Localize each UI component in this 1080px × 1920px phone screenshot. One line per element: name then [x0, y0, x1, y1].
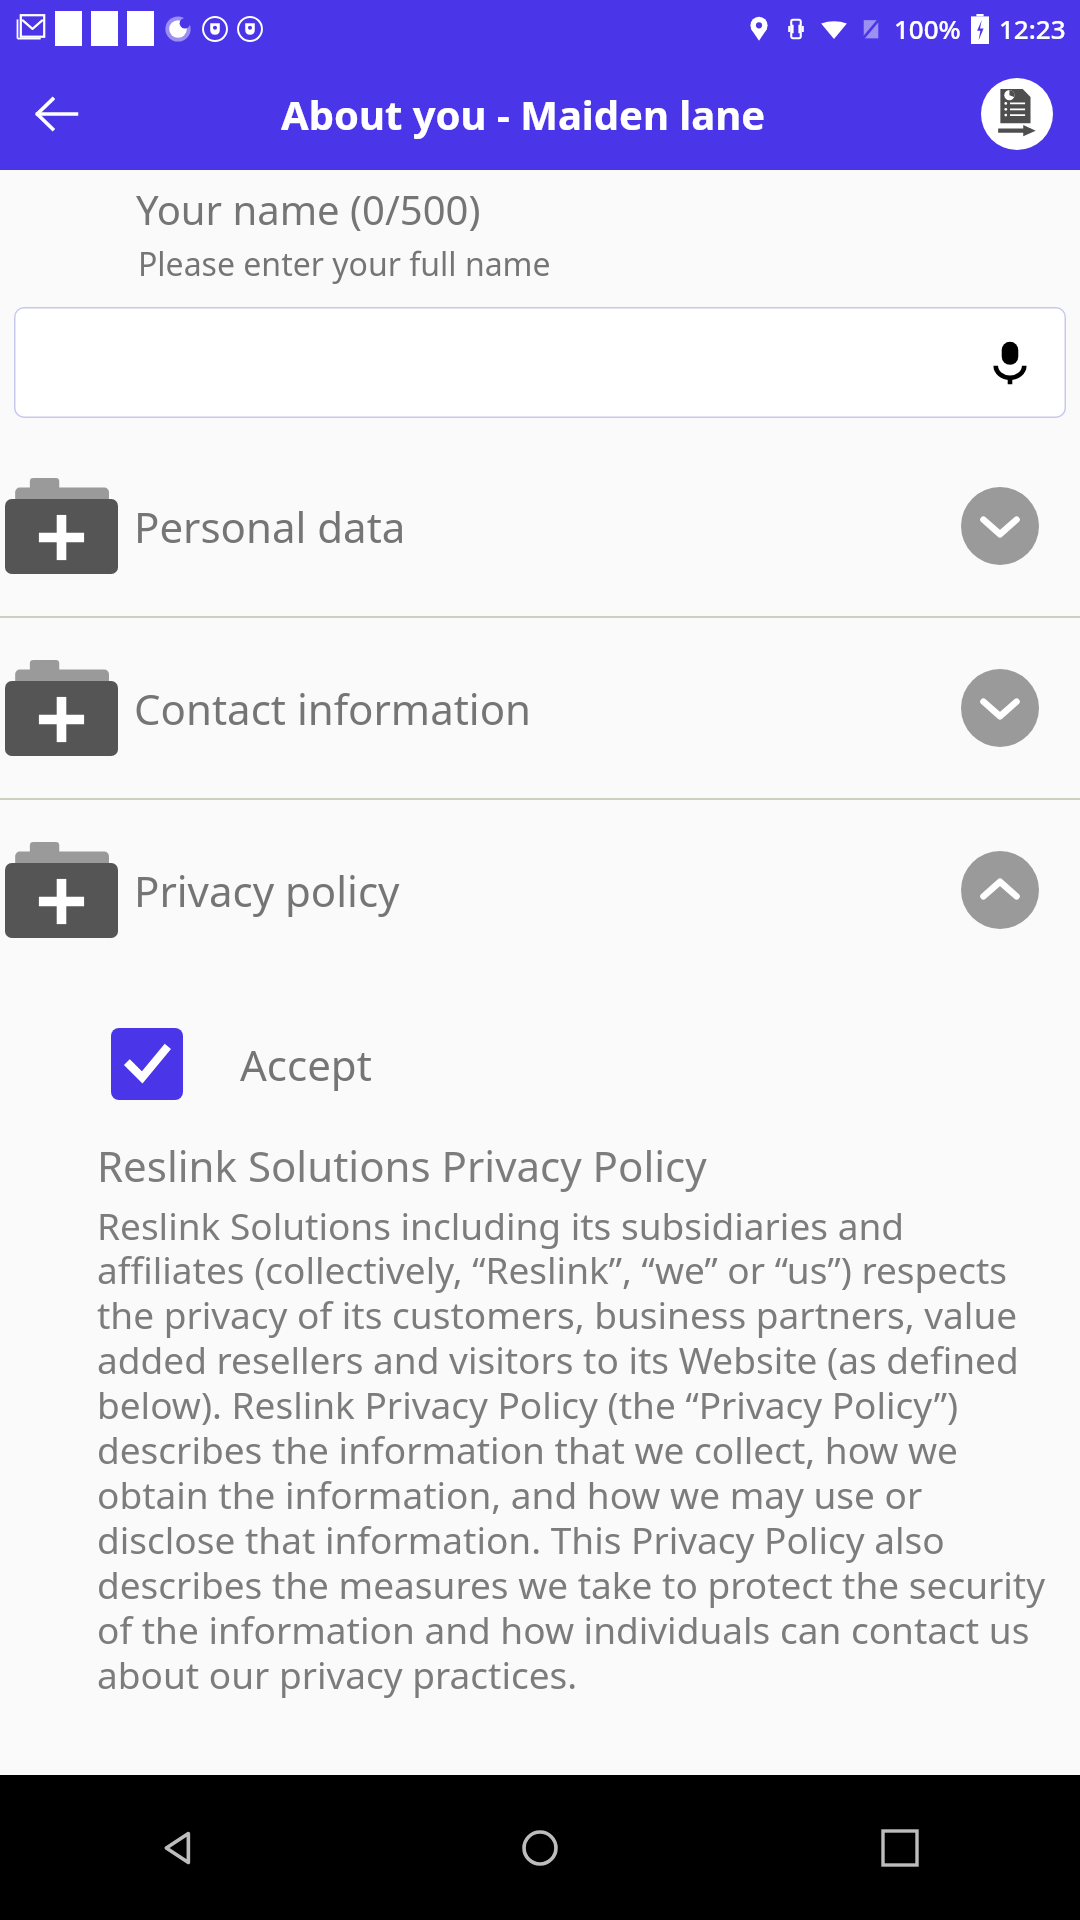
button[interactable]: Home — [360, 1775, 720, 1920]
button[interactable]: Contact information — [0, 618, 1080, 798]
button[interactable]: Voice input — [980, 333, 1040, 393]
button[interactable]: Expand — [961, 669, 1039, 747]
button[interactable]: Recents — [720, 1775, 1080, 1920]
staticText: 12:23 — [999, 11, 1066, 46]
staticText: Contact information — [134, 680, 532, 737]
staticText: Personal data — [134, 498, 406, 555]
staticText: About you - Maiden lane — [281, 87, 766, 141]
staticText: 100% — [894, 11, 961, 46]
staticText: Please enter your full name — [138, 242, 551, 286]
staticText: Your name (0/500) — [136, 182, 481, 236]
staticText: Reslink Solutions including its subsidia… — [97, 1200, 1060, 1700]
staticText: Accept — [240, 1036, 372, 1093]
button[interactable]: Expand — [961, 487, 1039, 565]
button[interactable]: Accept — [0, 1022, 1080, 1106]
button[interactable]: Report — [981, 78, 1053, 150]
button[interactable]: Privacy policy — [0, 800, 1080, 980]
staticText: Reslink Solutions Privacy Policy — [97, 1137, 707, 1194]
button[interactable]: Back — [0, 1775, 360, 1920]
button[interactable]: Personal data — [0, 436, 1080, 616]
button[interactable]: Back — [18, 75, 96, 153]
button[interactable]: Collapse — [961, 851, 1039, 929]
button[interactable]: Voice input — [14, 307, 1066, 418]
staticText: Privacy policy — [134, 862, 400, 919]
